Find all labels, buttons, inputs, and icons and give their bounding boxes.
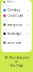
button[interactable]: Credit Card	[1, 13, 32, 18]
staticText: Brokerage	[7, 32, 21, 35]
staticText: Wallet	[7, 0, 15, 4]
staticText: 2,450	[26, 33, 30, 35]
staticText: ACCOUNTS	[3, 5, 11, 7]
staticText: 320	[27, 15, 30, 17]
staticText: Credit Card	[7, 14, 23, 17]
staticText: 8,100	[26, 24, 30, 26]
staticText: One Place	[9, 64, 23, 67]
button[interactable]: Checking	[1, 8, 32, 13]
staticText: Emergency	[7, 23, 21, 26]
staticText: Auto Loan	[7, 41, 21, 44]
staticText: 1,240	[26, 9, 30, 11]
staticText: Checking	[7, 8, 20, 12]
staticText: in	[15, 60, 18, 63]
staticText: 540	[27, 42, 30, 44]
staticText: INVESTING	[3, 28, 10, 30]
button[interactable]: Emergency	[1, 22, 32, 27]
staticText: LOANS	[3, 37, 8, 39]
button[interactable]: Auto Loan	[1, 40, 32, 45]
button[interactable]: Brokerage	[1, 31, 32, 36]
staticText: All Your Accounts	[4, 56, 28, 59]
staticText: SAVINGS	[3, 19, 9, 21]
